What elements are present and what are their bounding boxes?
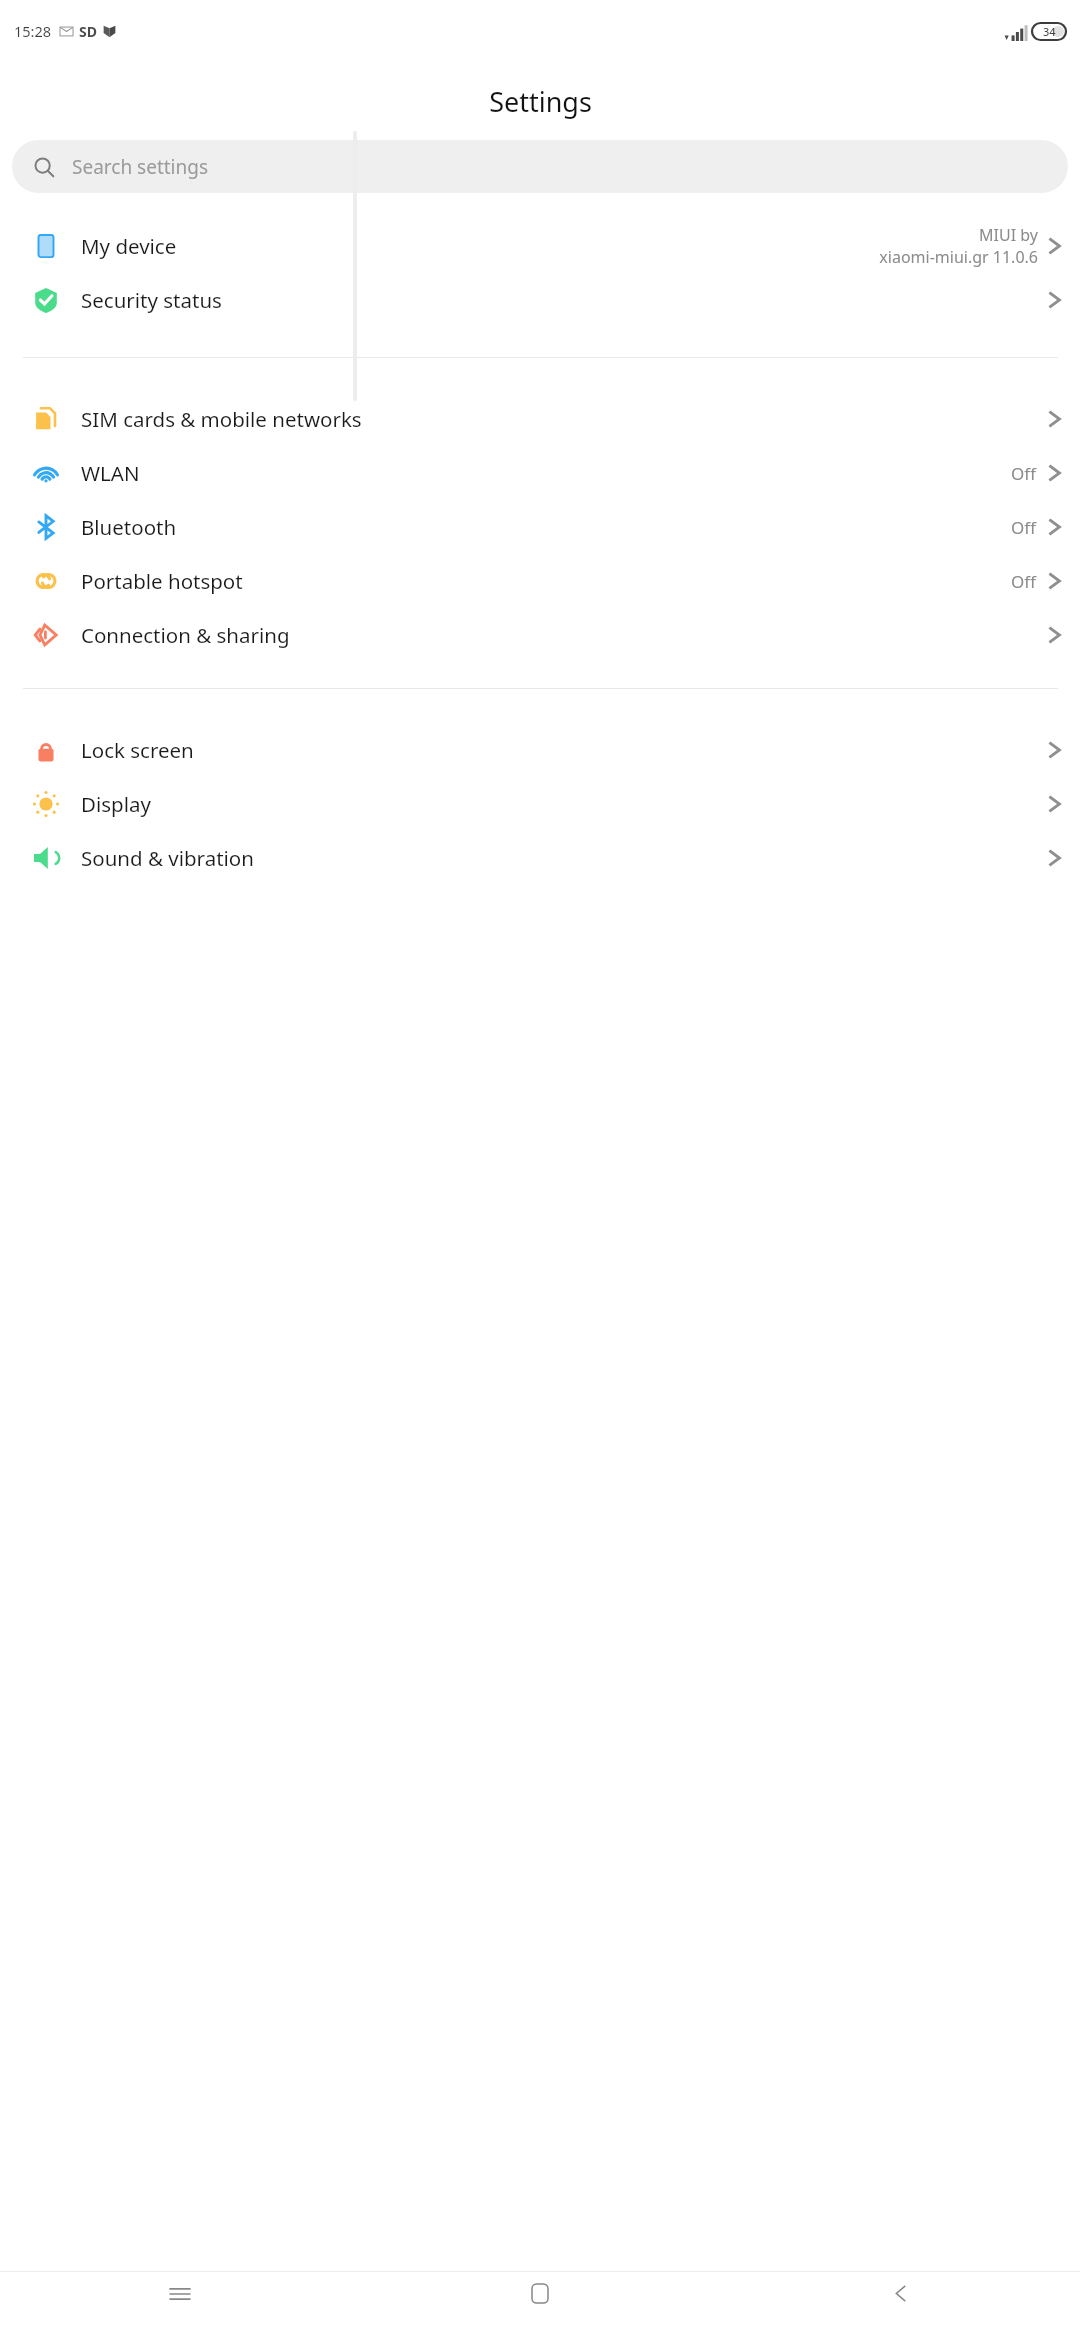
staticText: Settings <box>489 83 592 120</box>
button[interactable]: SIM cards & mobile networks <box>0 392 1080 446</box>
button[interactable]: Recent apps <box>0 2272 360 2315</box>
button[interactable]: Home <box>360 2272 720 2315</box>
staticText: MIUI by <box>979 224 1038 246</box>
button[interactable]: Back <box>720 2272 1080 2315</box>
staticText: Portable hotspot <box>81 567 243 595</box>
button[interactable]: Search settings <box>12 140 1068 193</box>
staticText: WLAN <box>81 459 140 487</box>
button[interactable]: Bluetooth <box>0 500 1080 554</box>
button[interactable]: Display <box>0 777 1080 831</box>
button[interactable]: Security status <box>0 273 1080 327</box>
staticText: xiaomi-miui.gr 11.0.6 <box>879 246 1038 268</box>
staticText: 34 <box>1043 24 1056 39</box>
staticText: Sound & vibration <box>81 844 254 872</box>
staticText: Bluetooth <box>81 513 177 541</box>
button[interactable]: My device <box>0 219 1080 273</box>
staticText: Off <box>1011 570 1036 593</box>
staticText: Search settings <box>72 154 209 180</box>
button[interactable]: Sound & vibration <box>0 831 1080 885</box>
staticText: 15:28 <box>14 21 52 41</box>
staticText: Display <box>81 790 151 818</box>
button[interactable]: WLAN <box>0 446 1080 500</box>
button[interactable]: Lock screen <box>0 723 1080 777</box>
staticText: Off <box>1011 462 1036 485</box>
staticText: SD <box>79 22 97 41</box>
button[interactable]: Connection & sharing <box>0 608 1080 662</box>
staticText: My device <box>81 232 177 260</box>
staticText: Off <box>1011 516 1036 539</box>
staticText: Connection & sharing <box>81 621 290 649</box>
staticText: Lock screen <box>81 736 194 764</box>
button[interactable]: Portable hotspot <box>0 554 1080 608</box>
staticText: Security status <box>81 286 222 314</box>
staticText: SIM cards & mobile networks <box>81 405 362 433</box>
